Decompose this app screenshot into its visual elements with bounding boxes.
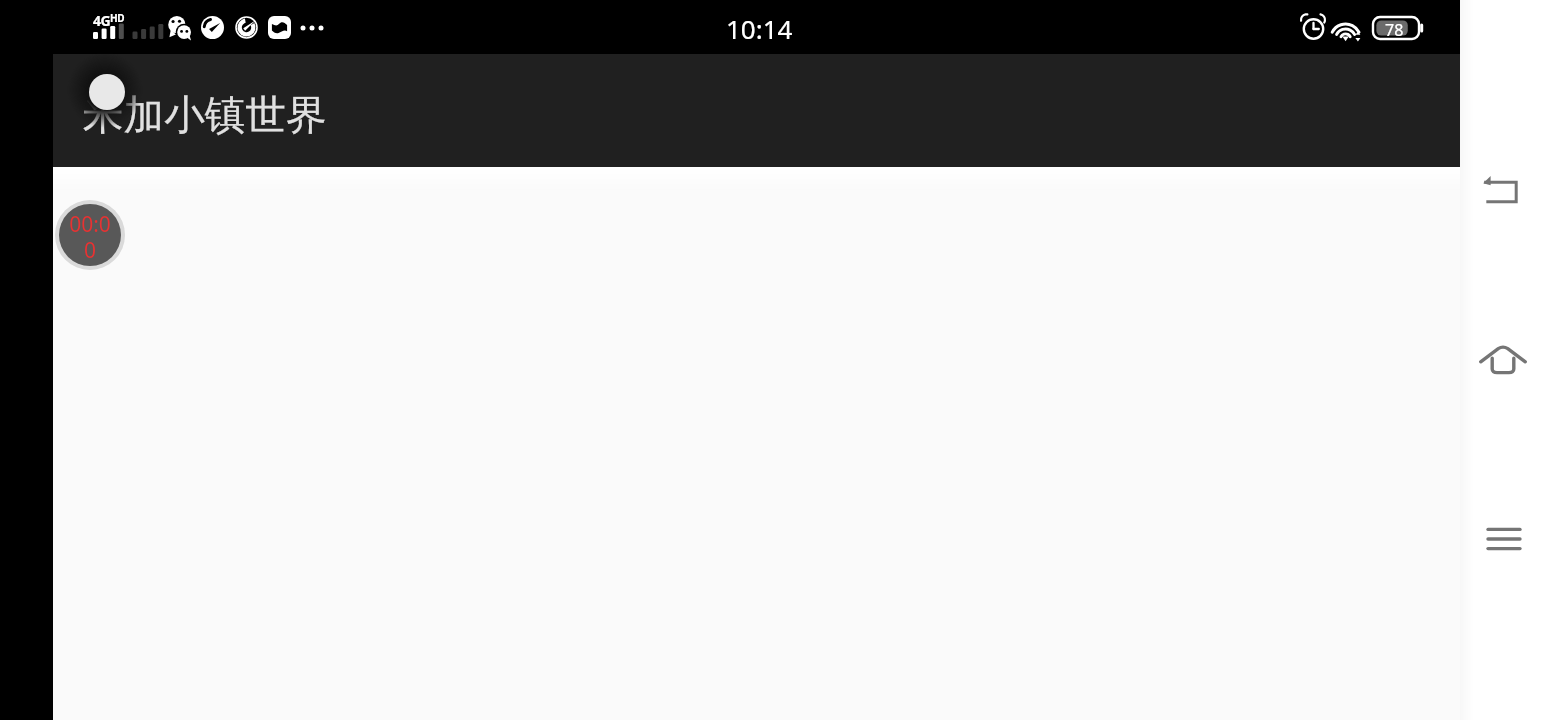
staticText: HD [110, 11, 125, 25]
button[interactable]: 米加小镇世界 [53, 54, 1460, 167]
button[interactable]: Home [1473, 330, 1533, 390]
button[interactable]: Timer 00:00 [55, 200, 125, 270]
button[interactable]: Back [1472, 164, 1528, 220]
staticText: 00:00 [67, 210, 113, 264]
staticText: 10:14 [726, 11, 793, 46]
staticText: 78 [1385, 19, 1404, 41]
staticText: 米加小镇世界 [83, 90, 327, 141]
button[interactable]: Recents [1476, 511, 1532, 567]
staticText: 4G [93, 11, 110, 30]
